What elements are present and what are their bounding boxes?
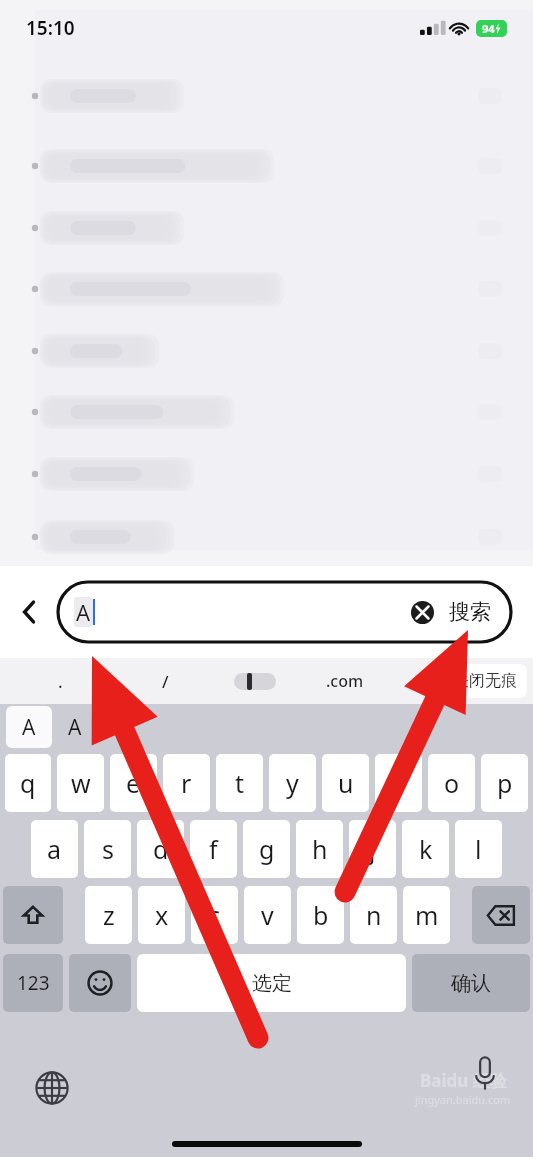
button[interactable]: l [455, 820, 502, 878]
button[interactable]: e [110, 754, 157, 812]
staticText: 选定 [252, 971, 292, 996]
button[interactable]: .com [300, 658, 390, 704]
button[interactable]: p [481, 754, 528, 812]
button[interactable]: 选定 [137, 954, 406, 1012]
staticText: x [155, 898, 169, 932]
button[interactable]: t [216, 754, 263, 812]
button[interactable]: r [163, 754, 210, 812]
button[interactable]: / [120, 658, 210, 704]
staticText: r [181, 766, 192, 800]
staticText: d [153, 832, 169, 866]
button[interactable]: 确认 [412, 954, 530, 1012]
staticText: s [102, 832, 114, 866]
button[interactable]: Emoji [69, 954, 131, 1012]
staticText: o [444, 766, 460, 800]
button[interactable]: x [138, 886, 185, 944]
staticText: q [20, 766, 36, 800]
button[interactable]: Move cursor [210, 658, 300, 704]
staticText: v [261, 898, 274, 932]
button[interactable]: k [402, 820, 449, 878]
button[interactable]: s [84, 820, 131, 878]
staticText: Baidu 经验 [420, 1069, 507, 1092]
staticText: .com [326, 670, 364, 692]
staticText: h [312, 832, 328, 866]
button[interactable]: o [428, 754, 475, 812]
button[interactable]: n [350, 886, 397, 944]
staticText: l [475, 832, 482, 866]
button[interactable]: f [190, 820, 237, 878]
staticText: 94 [482, 21, 495, 36]
staticText: . [58, 670, 63, 693]
button[interactable]: b [297, 886, 344, 944]
button[interactable]: . [0, 658, 120, 704]
button[interactable]: u [322, 754, 369, 812]
staticText: y [286, 766, 299, 800]
button[interactable]: q [5, 754, 51, 812]
button[interactable]: Back [0, 566, 58, 658]
staticText: c [208, 898, 221, 932]
button[interactable]: m [403, 886, 450, 944]
button[interactable]: g [243, 820, 290, 878]
button[interactable]: i [375, 754, 422, 812]
staticText: 123 [17, 970, 50, 996]
staticText: jingyan.baidu.com [415, 1092, 511, 1107]
button[interactable]: d [137, 820, 184, 878]
staticText: m [415, 898, 439, 932]
staticText: 15:10 [26, 15, 75, 41]
staticText: b [313, 898, 329, 932]
staticText: u [338, 766, 354, 800]
staticText: i [395, 766, 402, 800]
staticText: f [209, 832, 218, 866]
button[interactable]: c [191, 886, 238, 944]
button[interactable]: j [349, 820, 396, 878]
staticText: a [47, 832, 62, 866]
button[interactable]: z [85, 886, 132, 944]
staticText: g [259, 832, 275, 866]
button[interactable]: Backspace [472, 886, 530, 944]
button[interactable]: a [31, 820, 78, 878]
button[interactable]: v [244, 886, 291, 944]
staticText: p [497, 766, 513, 800]
staticText: z [103, 898, 115, 932]
button[interactable]: 123 [3, 954, 63, 1012]
staticText: e [126, 766, 141, 800]
button[interactable]: Clear [407, 597, 437, 627]
button[interactable]: y [269, 754, 316, 812]
button[interactable]: h [296, 820, 343, 878]
staticText: t [235, 766, 245, 800]
button[interactable]: w [57, 754, 104, 812]
staticText: k [419, 832, 433, 866]
staticText: n [366, 898, 382, 932]
button[interactable]: Shift [3, 886, 63, 944]
staticText: j [369, 832, 376, 866]
button[interactable]: 关闭无痕 [443, 664, 527, 698]
staticText: w [71, 766, 91, 800]
staticText: A [68, 713, 82, 742]
staticText: A [76, 597, 91, 627]
staticText: A [22, 713, 36, 742]
button[interactable]: Change language [30, 1066, 74, 1110]
button[interactable]: A [6, 706, 52, 748]
button[interactable]: 搜索 [449, 599, 491, 625]
staticText: 关闭无痕 [453, 671, 517, 691]
staticText: 搜索 [449, 599, 491, 625]
button[interactable]: A [52, 706, 98, 748]
staticText: 确认 [451, 971, 491, 996]
button[interactable]: Voice input [465, 1053, 505, 1093]
staticText: / [162, 670, 169, 693]
